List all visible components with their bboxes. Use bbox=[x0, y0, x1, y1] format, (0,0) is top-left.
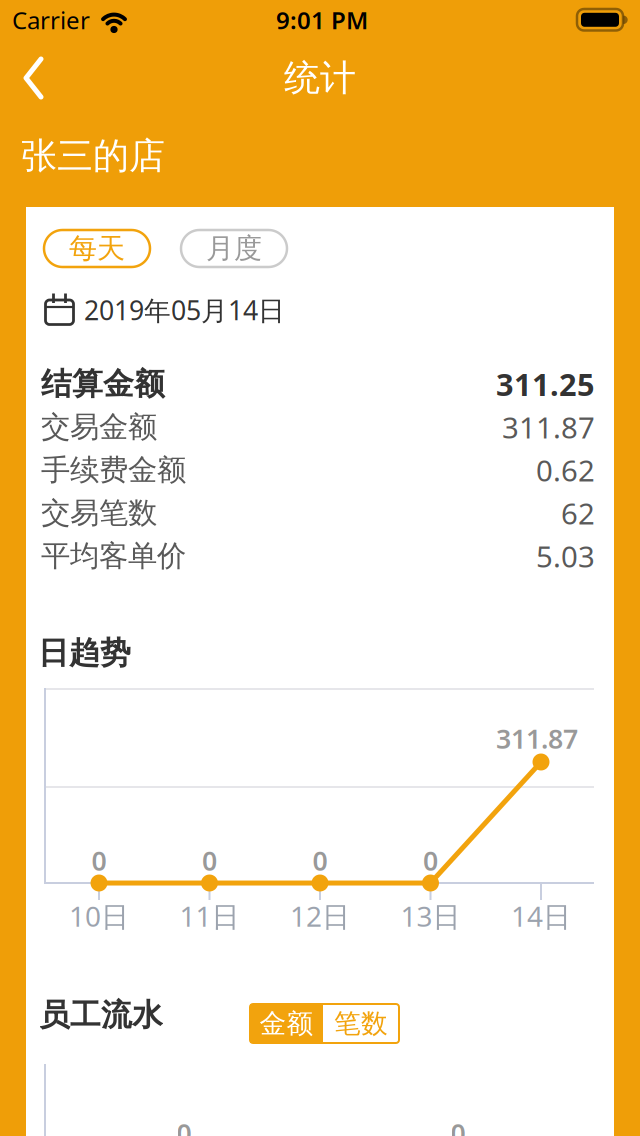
button[interactable]: 笔数 bbox=[323, 1004, 399, 1043]
staticText: 311.25 bbox=[496, 364, 595, 404]
staticText: 0 bbox=[312, 843, 327, 878]
staticText: 员工流水 bbox=[39, 996, 163, 1034]
staticText: 0 bbox=[176, 1115, 191, 1136]
staticText: 10日 bbox=[69, 897, 129, 935]
staticText: 统计 bbox=[284, 56, 356, 100]
staticText: 311.87 bbox=[496, 721, 578, 756]
staticText: 0 bbox=[91, 843, 106, 878]
staticText: 5.03 bbox=[536, 536, 595, 575]
staticText: 11日 bbox=[179, 897, 239, 935]
staticText: 平均客单价 bbox=[41, 538, 186, 574]
staticText: 0 bbox=[202, 843, 217, 878]
button[interactable]: 金额 bbox=[250, 1004, 323, 1043]
staticText: 12日 bbox=[290, 897, 350, 935]
staticText: 日趋势 bbox=[38, 634, 131, 672]
staticText: 结算金额 bbox=[41, 365, 165, 403]
staticText: 0.62 bbox=[536, 450, 595, 489]
staticText: 14日 bbox=[511, 897, 571, 935]
staticText: 2019年05月14日 bbox=[84, 292, 285, 328]
staticText: 交易金额 bbox=[41, 409, 157, 445]
button[interactable]: 选择日期 bbox=[44, 290, 294, 332]
staticText: 311.87 bbox=[502, 407, 595, 446]
staticText: 手续费金额 bbox=[41, 452, 186, 488]
staticText: Carrier bbox=[12, 4, 90, 36]
staticText: 13日 bbox=[400, 897, 460, 935]
staticText: 月度 bbox=[206, 231, 262, 266]
button[interactable]: Back bbox=[12, 52, 56, 104]
staticText: 62 bbox=[561, 493, 595, 532]
staticText: 每天 bbox=[69, 231, 125, 266]
button[interactable]: 月度 bbox=[181, 230, 287, 267]
staticText: 张三的店 bbox=[21, 134, 165, 178]
staticText: 金额 bbox=[259, 1007, 313, 1040]
staticText: 笔数 bbox=[334, 1007, 388, 1040]
staticText: 交易笔数 bbox=[41, 495, 157, 531]
staticText: 0 bbox=[450, 1115, 465, 1136]
staticText: 0 bbox=[423, 843, 438, 878]
staticText: 9:01 PM bbox=[276, 4, 368, 36]
button[interactable]: 每天 bbox=[44, 230, 150, 267]
